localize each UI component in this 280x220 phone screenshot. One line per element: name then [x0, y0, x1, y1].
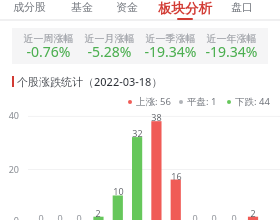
button[interactable]: 基金	[54, 0, 110, 21]
staticText: 上涨: 56	[136, 95, 171, 108]
button[interactable]: 下跌: 44	[227, 95, 270, 108]
staticText: 10	[113, 185, 124, 197]
staticText: 板块分析	[158, 0, 212, 17]
staticText: 近一年涨幅	[201, 32, 262, 45]
staticText: 资金	[116, 0, 138, 14]
staticText: 盘口	[231, 0, 253, 14]
button[interactable]: 近一季涨幅	[140, 28, 201, 64]
staticText: 0	[76, 212, 82, 220]
staticText: 平盘: 1	[187, 95, 217, 108]
staticText: 近一月涨幅	[79, 32, 140, 45]
staticText: 38	[151, 111, 162, 123]
button[interactable]: 个股涨跌统计（2022-03-18）	[12, 74, 163, 89]
staticText: 近一季涨幅	[140, 32, 201, 45]
staticText: 40	[8, 109, 19, 121]
staticText: -19.34%	[201, 42, 262, 61]
staticText: 基金	[71, 0, 93, 14]
button[interactable]: 上涨: 56	[128, 95, 171, 108]
button[interactable]: 盘口	[214, 0, 270, 21]
staticText: 0	[231, 212, 237, 220]
staticText: 0	[57, 212, 63, 220]
button[interactable]: 平盘: 1	[179, 95, 217, 108]
staticText: -0.76%	[18, 42, 79, 61]
button[interactable]: 近一周涨幅	[18, 28, 79, 64]
staticText: 成分股	[13, 0, 46, 14]
staticText: 32	[132, 127, 143, 139]
staticText: 近一周涨幅	[18, 32, 79, 45]
staticText: -5.28%	[79, 42, 140, 61]
staticText: 2	[95, 207, 101, 219]
button[interactable]: 近一年涨幅	[201, 28, 262, 64]
staticText: 2	[250, 207, 256, 219]
staticText: 个股涨跌统计（2022-03-18）	[17, 74, 163, 89]
button[interactable]: 近一月涨幅	[79, 28, 140, 64]
button[interactable]: 板块分析	[153, 0, 217, 21]
staticText: 0	[38, 212, 44, 220]
button[interactable]: 资金	[99, 0, 155, 21]
staticText: -19.34%	[140, 42, 201, 61]
staticText: 20	[8, 163, 19, 175]
button[interactable]: 成分股	[1, 0, 57, 21]
staticText: 16	[171, 170, 182, 182]
staticText: 0	[211, 212, 217, 220]
staticText: 0	[192, 212, 198, 220]
staticText: 0	[13, 214, 19, 220]
staticText: 下跌: 44	[235, 95, 270, 108]
